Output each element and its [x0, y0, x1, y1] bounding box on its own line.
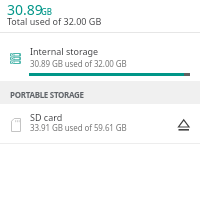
staticText: Internal storage: [30, 45, 99, 57]
staticText: GB: [41, 6, 53, 17]
staticText: SD card: [30, 111, 63, 123]
staticText: 30.89 GB used of 32.00 GB: [30, 58, 127, 69]
staticText: PORTABLE STORAGE: [10, 89, 84, 100]
staticText: 30.89: [7, 0, 43, 19]
button[interactable]: SD card: [0, 103, 200, 143]
staticText: 33.91 GB used of 59.61 GB: [30, 122, 127, 133]
button[interactable]: Internal storage: [0, 40, 200, 80]
staticText: Total used of 32.00 GB: [7, 15, 102, 27]
button[interactable]: [172, 111, 196, 135]
